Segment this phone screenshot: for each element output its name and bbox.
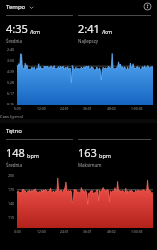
staticText: 6:17 bbox=[7, 91, 15, 96]
staticText: 200 bbox=[8, 173, 15, 178]
staticText: 4:39 bbox=[7, 69, 15, 74]
staticText: Średnia bbox=[6, 38, 23, 44]
staticText: 12:00 bbox=[37, 229, 60, 234]
staticText: Średnia bbox=[6, 162, 23, 168]
staticText: Tempo bbox=[6, 3, 26, 11]
button[interactable]: Tempo bbox=[6, 3, 36, 11]
staticText: 4:35 bbox=[6, 21, 28, 36]
staticText: 1:00:03 bbox=[131, 229, 155, 234]
staticText: 1:00:03 bbox=[131, 106, 155, 111]
staticText: 12:00 bbox=[37, 106, 60, 111]
staticText: Maksimum bbox=[78, 162, 102, 168]
staticText: 170 bbox=[8, 187, 15, 192]
button[interactable]: Informacje bbox=[143, 2, 152, 11]
staticText: bpm bbox=[27, 152, 39, 159]
staticText: 0:00 bbox=[14, 229, 37, 234]
staticText: 48:02 bbox=[107, 229, 131, 234]
staticText: Najlepszy bbox=[78, 38, 99, 44]
staticText: 2:41 bbox=[78, 21, 100, 36]
staticText: 48:02 bbox=[107, 106, 131, 111]
staticText: 3:50 bbox=[7, 58, 15, 63]
staticText: 8:26 bbox=[7, 102, 15, 105]
staticText: 36:01 bbox=[83, 106, 107, 111]
staticText: 148 bbox=[6, 145, 25, 160]
staticText: 24:01 bbox=[60, 106, 83, 111]
staticText: bpm bbox=[99, 152, 111, 159]
staticText: Tętno bbox=[6, 127, 22, 135]
staticText: /km bbox=[102, 28, 113, 35]
staticText: 24:01 bbox=[60, 229, 83, 234]
staticText: 140 bbox=[8, 201, 15, 206]
staticText: 163 bbox=[78, 145, 97, 160]
staticText: Czas (g:m:s) bbox=[0, 114, 157, 119]
staticText: 5:28 bbox=[7, 80, 15, 85]
staticText: 0:00 bbox=[14, 106, 37, 111]
staticText: 110 bbox=[8, 215, 15, 220]
staticText: /km bbox=[30, 28, 41, 35]
staticText: 2:40 bbox=[7, 47, 15, 52]
staticText: 36:01 bbox=[83, 229, 107, 234]
